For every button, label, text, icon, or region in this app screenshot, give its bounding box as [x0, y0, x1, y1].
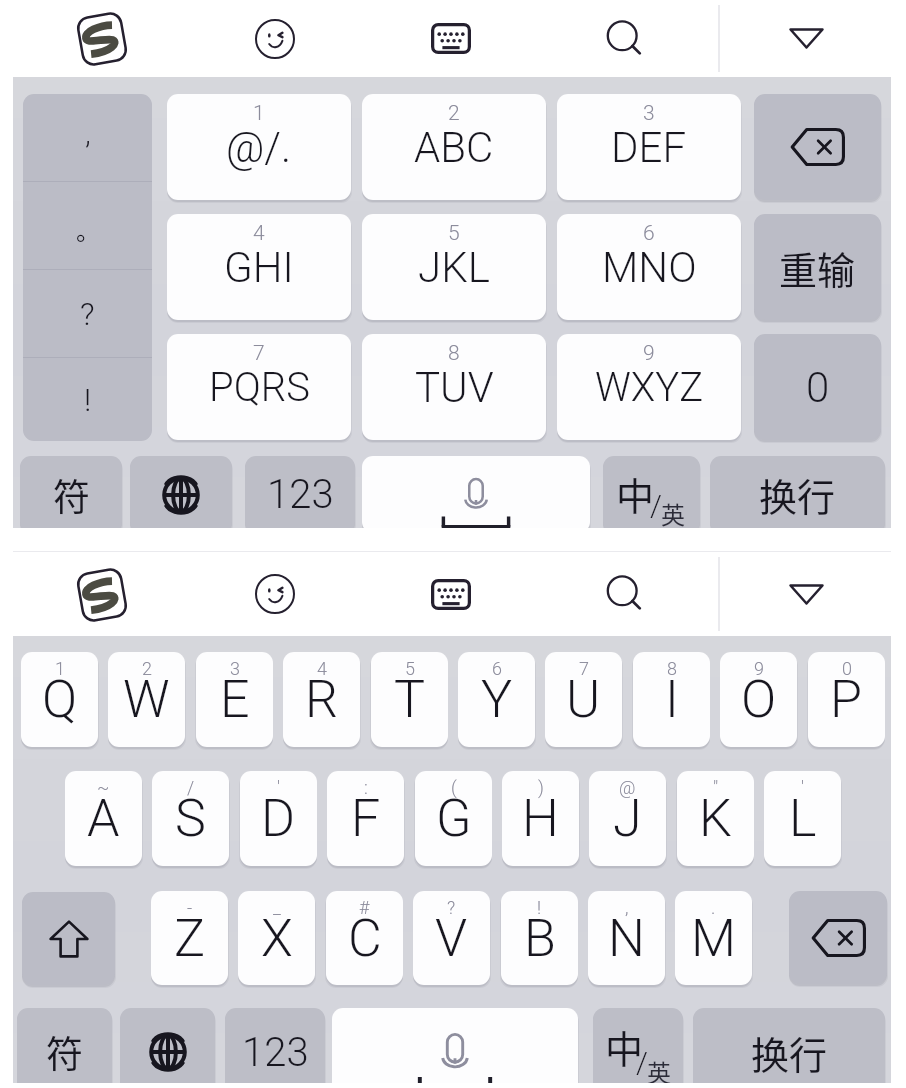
- button[interactable]: ": [677, 771, 754, 866]
- button[interactable]: 4: [283, 652, 360, 747]
- staticText: .: [711, 897, 716, 918]
- staticText: 4: [253, 221, 265, 246]
- button[interactable]: ': [764, 771, 841, 866]
- button[interactable]: ?: [413, 891, 490, 985]
- staticText: ABC: [414, 123, 494, 172]
- staticText: Y: [481, 669, 513, 730]
- button[interactable]: Switch input language: [120, 1008, 215, 1088]
- staticText: Z: [174, 908, 206, 969]
- staticText: 3: [230, 658, 240, 679]
- button[interactable]: Sogou input method: [58, 552, 146, 636]
- staticText: 中: [616, 466, 655, 521]
- button[interactable]: 中: [593, 1008, 683, 1088]
- button[interactable]: @: [589, 771, 666, 866]
- staticText: M: [691, 908, 736, 969]
- staticText: 8: [667, 658, 677, 679]
- button[interactable]: _: [238, 891, 315, 985]
- staticText: 1: [253, 101, 265, 126]
- button[interactable]: 0: [808, 652, 885, 747]
- button[interactable]: Search: [583, 0, 667, 77]
- button[interactable]: 换行: [693, 1008, 885, 1088]
- button[interactable]: Sogou input method: [58, 0, 146, 77]
- button[interactable]: 6: [557, 214, 741, 320]
- staticText: 6: [643, 221, 655, 246]
- button[interactable]: 0: [754, 334, 881, 440]
- button[interactable]: 符: [17, 1008, 112, 1088]
- staticText: E: [220, 669, 250, 730]
- button[interactable]: 中: [603, 456, 700, 533]
- staticText: 7: [579, 658, 589, 679]
- button[interactable]: Space: [362, 456, 590, 533]
- button[interactable]: 8: [362, 334, 546, 440]
- button[interactable]: 4: [167, 214, 351, 320]
- button[interactable]: (: [415, 771, 492, 866]
- staticText: 8: [448, 341, 460, 366]
- button[interactable]: 5: [371, 652, 448, 747]
- button[interactable]: 7: [167, 334, 351, 440]
- button[interactable]: Emoji: [233, 0, 317, 77]
- button[interactable]: 3: [196, 652, 273, 747]
- button[interactable]: 3: [557, 94, 741, 200]
- button[interactable]: ': [240, 771, 317, 866]
- staticText: 换行: [751, 1025, 828, 1080]
- button[interactable]: .: [675, 891, 752, 985]
- button[interactable]: Shift: [22, 892, 115, 985]
- button[interactable]: 2: [108, 652, 185, 747]
- button[interactable]: 换行: [710, 456, 885, 533]
- button[interactable]: Space: [332, 1008, 578, 1088]
- staticText: J: [613, 788, 642, 849]
- button[interactable]: 重输: [754, 214, 881, 320]
- button[interactable]: Search: [583, 552, 667, 636]
- button[interactable]: 9: [557, 334, 741, 440]
- button[interactable]: Backspace: [754, 94, 881, 200]
- staticText: /: [650, 488, 662, 523]
- button[interactable]: 6: [458, 652, 535, 747]
- staticText: 5: [405, 658, 415, 679]
- button[interactable]: #: [326, 891, 403, 985]
- staticText: L: [789, 788, 817, 849]
- button[interactable]: ,: [23, 94, 152, 441]
- button[interactable]: 符: [20, 456, 122, 533]
- button[interactable]: Hide keyboard: [764, 552, 848, 636]
- staticText: 0: [806, 363, 830, 412]
- staticText: 0: [842, 658, 852, 679]
- staticText: 重输: [779, 240, 856, 295]
- button[interactable]: 123: [245, 456, 355, 533]
- button[interactable]: 5: [362, 214, 546, 320]
- button[interactable]: !: [501, 891, 578, 985]
- button[interactable]: 9: [720, 652, 797, 747]
- button[interactable]: ): [502, 771, 579, 866]
- button[interactable]: 123: [225, 1008, 325, 1088]
- staticText: :: [364, 777, 368, 798]
- staticText: H: [522, 788, 559, 849]
- button[interactable]: -: [151, 891, 228, 985]
- button[interactable]: Backspace: [789, 891, 887, 984]
- staticText: ": [713, 777, 719, 798]
- button[interactable]: ,: [588, 891, 665, 985]
- staticText: W: [123, 669, 170, 730]
- button[interactable]: 1: [21, 652, 98, 747]
- staticText: ?: [80, 295, 95, 333]
- button[interactable]: ~: [65, 771, 142, 866]
- staticText: PQRS: [209, 364, 310, 411]
- button[interactable]: :: [327, 771, 404, 866]
- staticText: G: [436, 788, 472, 849]
- button[interactable]: /: [152, 771, 229, 866]
- staticText: 6: [492, 658, 502, 679]
- button[interactable]: Keyboard layout: [409, 552, 493, 636]
- button[interactable]: 8: [633, 652, 710, 747]
- button[interactable]: Hide keyboard: [764, 0, 848, 77]
- button[interactable]: Keyboard layout: [409, 0, 493, 77]
- button[interactable]: Emoji: [233, 552, 317, 636]
- staticText: D: [261, 788, 296, 849]
- staticText: DEF: [611, 123, 687, 172]
- staticText: 2: [142, 658, 152, 679]
- staticText: ): [538, 777, 544, 798]
- button[interactable]: 7: [545, 652, 622, 747]
- staticText: A: [87, 788, 120, 849]
- staticText: _: [273, 897, 281, 918]
- button[interactable]: 2: [362, 94, 546, 200]
- button[interactable]: 1: [167, 94, 351, 200]
- staticText: 9: [754, 658, 764, 679]
- button[interactable]: Switch input language: [130, 456, 232, 533]
